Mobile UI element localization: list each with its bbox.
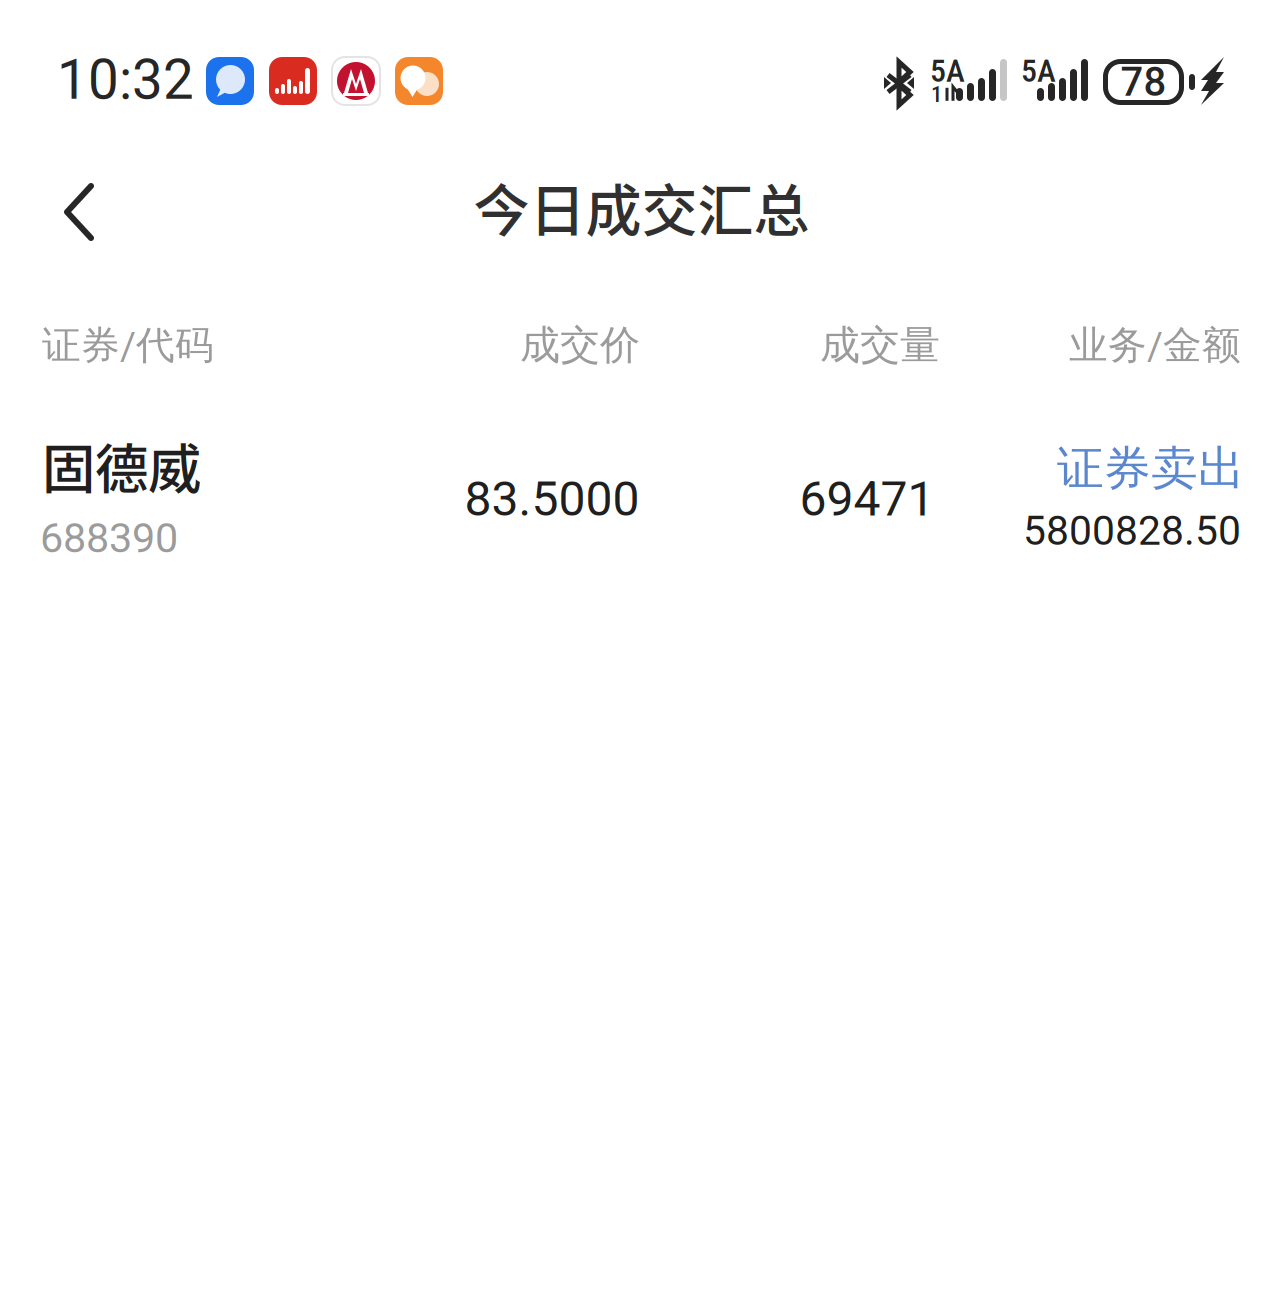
staticText: 688390 (40, 514, 178, 562)
staticText: 69471 (799, 471, 934, 527)
staticText: 78 (1120, 59, 1166, 105)
staticText: 固德威 (42, 427, 201, 504)
staticText: 今日成交汇总 (473, 166, 809, 247)
staticText: 83.5000 (464, 471, 639, 527)
staticText: 5A (930, 52, 965, 89)
button[interactable]: Back (34, 151, 124, 273)
staticText: 证券卖出 (1057, 439, 1245, 498)
staticText: 业务/金额 (1069, 321, 1241, 370)
button[interactable]: 固德威 (0, 410, 1275, 580)
staticText: 1 (931, 81, 942, 108)
staticText: 成交价 (520, 320, 640, 370)
staticText: 5A (1021, 52, 1056, 89)
staticText: 证券/代码 (42, 321, 214, 370)
staticText: 10:32 (57, 48, 194, 112)
staticText: 5800828.50 (1023, 507, 1241, 555)
staticText: 成交量 (820, 320, 940, 370)
